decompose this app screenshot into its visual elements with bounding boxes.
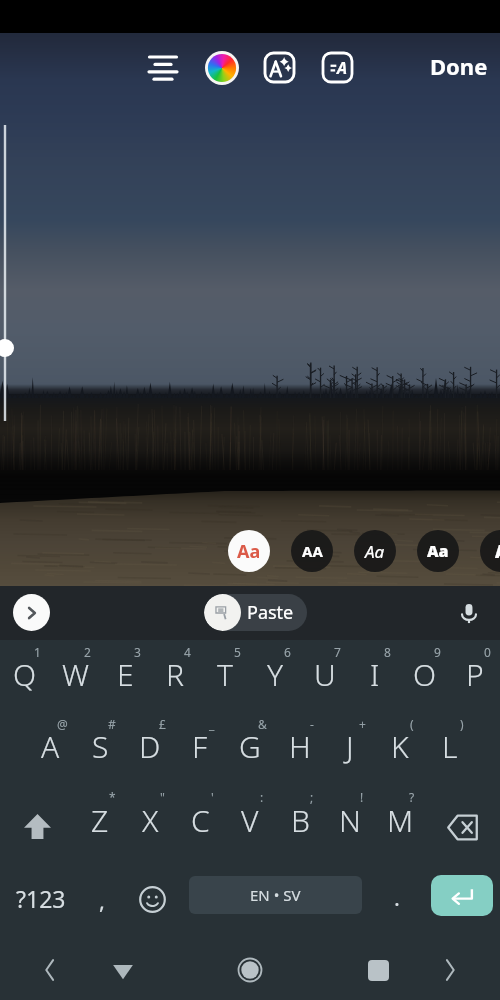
button[interactable]: Enter <box>431 875 493 916</box>
staticText: EN • SV <box>250 885 301 905</box>
staticText: . <box>394 882 400 912</box>
button[interactable]: 4 <box>150 640 200 712</box>
button[interactable]: 9 <box>400 640 450 712</box>
staticText: @ <box>57 716 68 732</box>
button[interactable]: £ <box>125 712 175 785</box>
staticText: 9 <box>434 644 441 660</box>
button[interactable]: Backspace <box>425 785 500 860</box>
staticText: I <box>370 654 380 695</box>
staticText: S <box>92 726 109 767</box>
button[interactable]: Hide keyboard <box>103 950 143 990</box>
staticText: M <box>387 800 414 841</box>
staticText: B <box>291 800 310 841</box>
staticText: ; <box>310 789 314 805</box>
button[interactable]: , <box>78 860 126 930</box>
button[interactable]: 3 <box>100 640 150 712</box>
button[interactable]: - <box>275 712 325 785</box>
staticText: C <box>191 800 210 841</box>
button[interactable]: ! <box>325 785 375 860</box>
button[interactable]: Shift <box>0 785 75 860</box>
staticText: 6 <box>284 644 291 660</box>
button[interactable]: ?123 <box>0 860 78 930</box>
staticText: A <box>41 726 60 767</box>
staticText: R <box>166 654 184 695</box>
staticText: ( <box>410 716 414 732</box>
button[interactable]: : <box>225 785 275 860</box>
staticText: O <box>413 654 437 695</box>
button[interactable]: Text color <box>199 45 244 90</box>
button[interactable]: Text alignment <box>140 45 185 90</box>
staticText: 0 <box>484 644 491 660</box>
button[interactable]: ( <box>375 712 425 785</box>
button[interactable]: Expand toolbar <box>13 594 50 631</box>
button[interactable]: ) <box>425 712 475 785</box>
button[interactable]: _ <box>175 712 225 785</box>
button[interactable]: EN • SV <box>189 876 362 914</box>
staticText: Q <box>13 654 37 695</box>
staticText: X <box>142 800 159 841</box>
button[interactable]: Voice input <box>452 596 486 630</box>
button[interactable]: Done <box>424 43 494 88</box>
staticText: " <box>160 789 165 805</box>
staticText: Aa <box>365 540 385 563</box>
button[interactable]: ; <box>275 785 325 860</box>
staticText: 5 <box>234 644 241 660</box>
button[interactable]: Paste <box>204 594 307 631</box>
staticText: Aa <box>237 539 261 564</box>
staticText: G <box>239 726 261 767</box>
button[interactable]: Text style <box>315 45 360 90</box>
button[interactable]: . <box>362 860 431 930</box>
staticText: + <box>359 716 366 732</box>
button[interactable]: ' <box>175 785 225 860</box>
button[interactable]: Emoji <box>126 860 178 930</box>
button[interactable]: ? <box>375 785 425 860</box>
staticText: K <box>391 726 409 767</box>
button[interactable]: A <box>480 530 500 572</box>
staticText: Paste <box>247 600 294 625</box>
button[interactable]: 7 <box>300 640 350 712</box>
button[interactable]: Aa <box>228 530 270 572</box>
staticText: V <box>241 800 259 841</box>
button[interactable]: * <box>75 785 125 860</box>
button[interactable]: @ <box>25 712 75 785</box>
staticText: - <box>310 716 314 732</box>
button[interactable]: & <box>225 712 275 785</box>
button[interactable]: Recent apps <box>358 950 398 990</box>
staticText: 1 <box>34 644 41 660</box>
staticText: Y <box>267 654 284 695</box>
staticText: ?123 <box>16 883 66 914</box>
button[interactable]: # <box>75 712 125 785</box>
staticText: 4 <box>184 644 191 660</box>
button[interactable]: + <box>325 712 375 785</box>
staticText: * <box>109 789 116 805</box>
staticText: D <box>139 726 161 767</box>
button[interactable]: Previous <box>30 950 70 990</box>
staticText: W <box>62 654 89 695</box>
button[interactable]: Aa <box>354 530 396 572</box>
staticText: T <box>217 654 233 695</box>
staticText: P <box>466 654 484 695</box>
staticText: 3 <box>134 644 141 660</box>
staticText: : <box>260 789 264 805</box>
button[interactable]: " <box>125 785 175 860</box>
staticText: N <box>339 800 361 841</box>
button[interactable]: 2 <box>50 640 100 712</box>
staticText: L <box>442 726 458 767</box>
button[interactable]: Aa <box>417 530 459 572</box>
staticText: ) <box>460 716 464 732</box>
button[interactable]: Text effects <box>257 45 302 90</box>
button[interactable]: 6 <box>250 640 300 712</box>
button[interactable]: Home <box>230 950 270 990</box>
button[interactable]: 1 <box>0 640 50 712</box>
staticText: Z <box>91 800 109 841</box>
button[interactable]: 8 <box>350 640 400 712</box>
staticText: 7 <box>334 644 341 660</box>
staticText: A <box>495 540 500 563</box>
button[interactable]: Next <box>430 950 470 990</box>
staticText: U <box>314 654 336 695</box>
button[interactable]: AA <box>291 530 333 572</box>
staticText: A <box>337 57 348 79</box>
button[interactable]: 0 <box>450 640 500 712</box>
button[interactable]: 5 <box>200 640 250 712</box>
staticText: Done <box>430 51 488 81</box>
